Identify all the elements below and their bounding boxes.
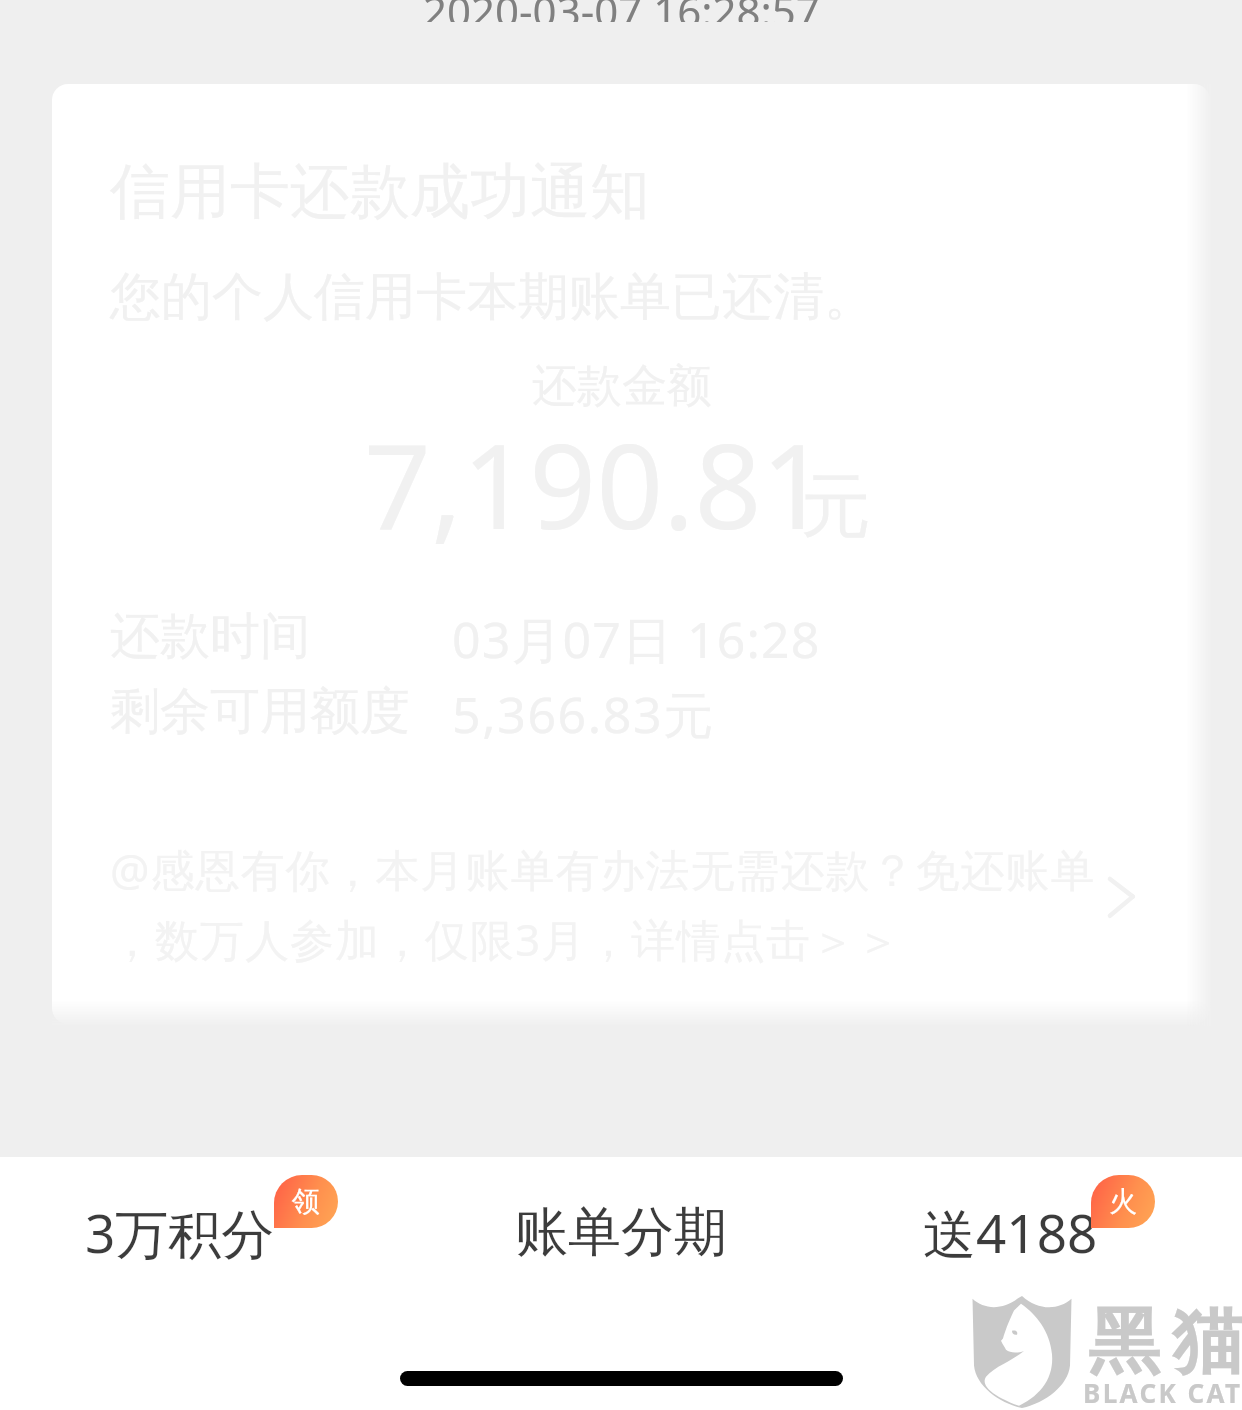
staticText: 信用卡还款成功通知: [110, 154, 650, 230]
staticText: 还款时间: [110, 605, 310, 668]
staticText: 账单分期: [515, 1199, 727, 1266]
button[interactable]: 信用卡还款成功通知: [52, 84, 1210, 1024]
button[interactable]: @感恩有你，本月账单有办法无需还款？免还账单 ，数万人参加，仅限3月，详情点击＞…: [110, 839, 1180, 969]
staticText: 还款金额: [532, 358, 712, 415]
staticText: BLACK CAT: [1083, 1375, 1242, 1410]
staticText: 3万积分: [85, 1196, 275, 1268]
staticText: 您的个人信用卡本期账单已还清。: [110, 265, 875, 329]
staticText: 火: [1109, 1184, 1137, 1219]
staticText: @感恩有你，本月账单有办法无需还款？免还账单 ，数万人参加，仅限3月，详情点击＞…: [110, 839, 1110, 969]
button[interactable]: 账单分期: [491, 1191, 751, 1274]
staticText: 黑猫: [1082, 1297, 1242, 1388]
staticText: 03月07日 16:28: [452, 605, 821, 673]
staticText: 2020-03-07 16:28:57: [423, 0, 820, 22]
button[interactable]: 3万积分: [85, 1175, 275, 1247]
staticText: 7,190.81: [364, 404, 829, 563]
button[interactable]: 送4188: [923, 1175, 1098, 1247]
staticText: 送4188: [923, 1196, 1098, 1268]
staticText: 元: [801, 463, 871, 551]
staticText: 领: [292, 1184, 320, 1219]
other: More: [1098, 868, 1150, 920]
staticText: 5,366.83元: [452, 680, 715, 748]
staticText: 剩余可用额度: [110, 680, 410, 743]
